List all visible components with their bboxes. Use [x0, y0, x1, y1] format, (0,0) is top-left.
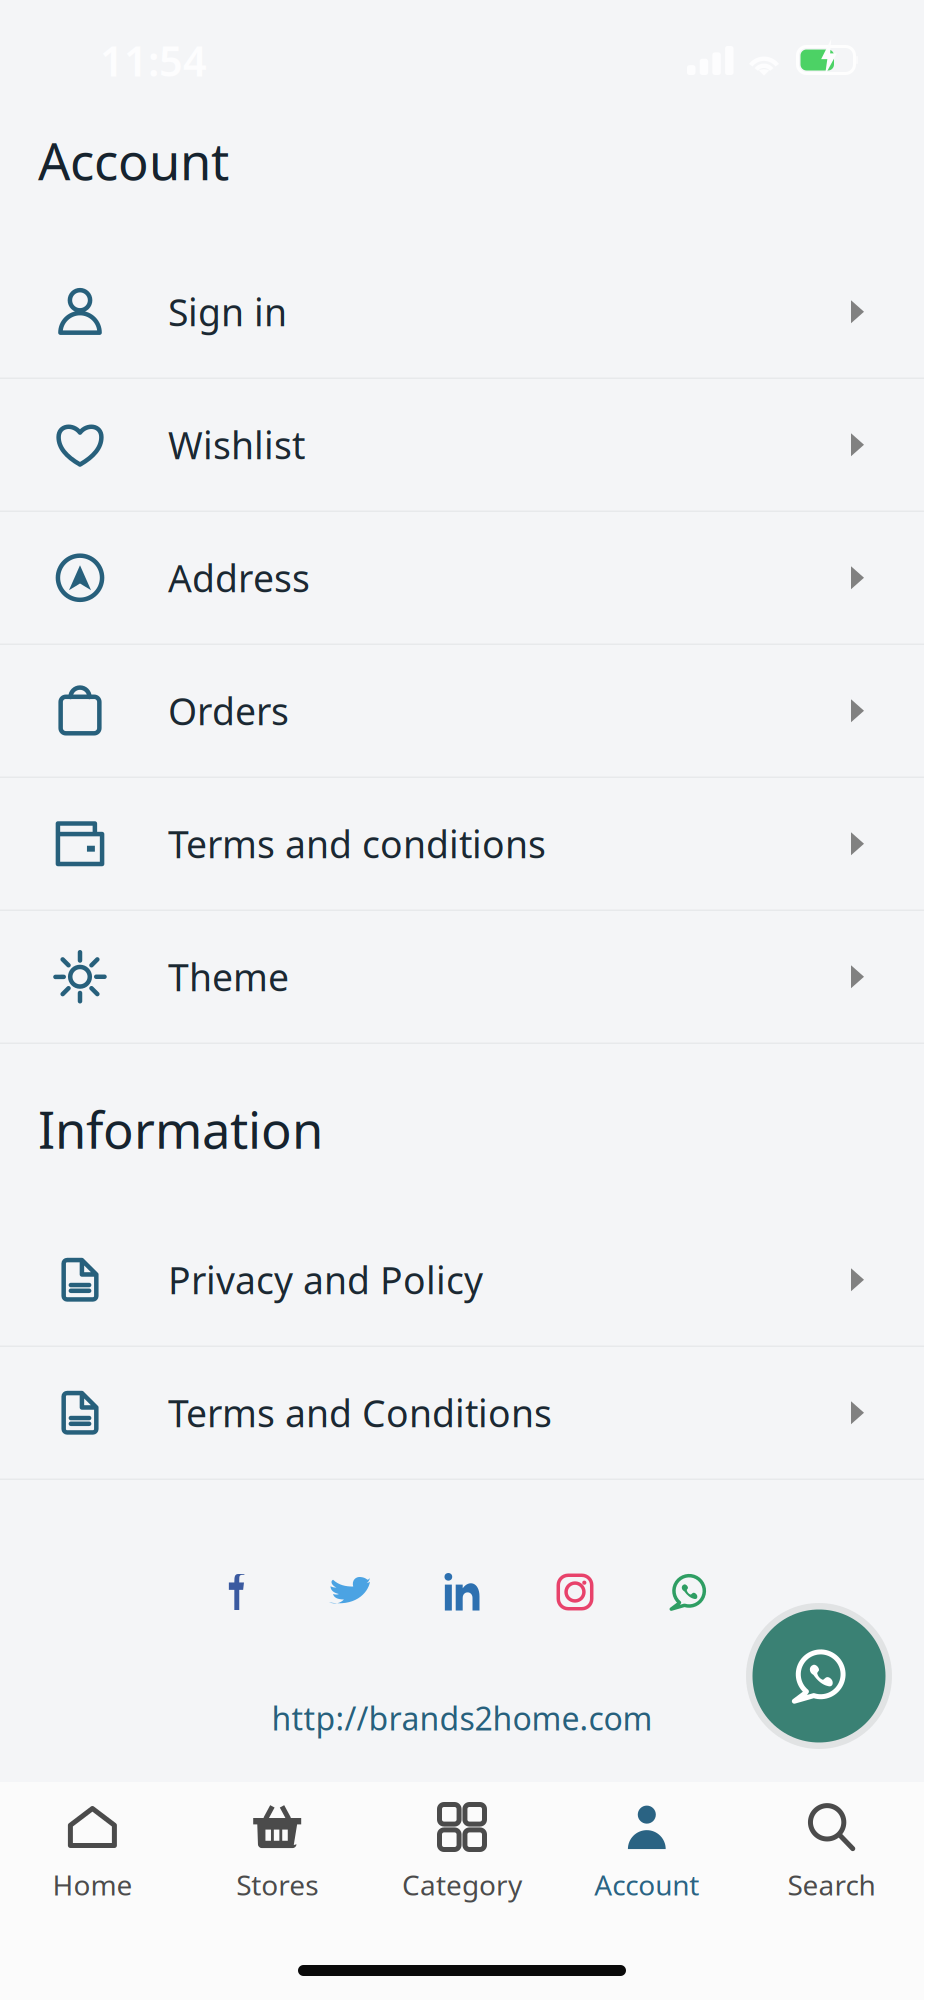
staticText: Terms and conditions: [168, 819, 546, 869]
button[interactable]: Address: [0, 512, 924, 643]
button[interactable]: Orders: [0, 645, 924, 776]
staticText: http://brands2home.com: [271, 1697, 652, 1739]
staticText: Information: [38, 1095, 323, 1163]
button[interactable]: WhatsApp: [631, 1568, 744, 1616]
button[interactable]: Chat on WhatsApp: [746, 1603, 892, 1749]
staticText: Wishlist: [168, 420, 305, 470]
button[interactable]: Category: [370, 1802, 554, 1903]
staticText: Stores: [236, 1866, 318, 1903]
button[interactable]: Stores: [185, 1802, 370, 1903]
staticText: Category: [402, 1866, 522, 1903]
staticText: Address: [168, 553, 310, 603]
button[interactable]: Home: [0, 1802, 185, 1903]
staticText: Orders: [168, 686, 289, 736]
staticText: Account: [594, 1866, 699, 1903]
staticText: Search: [788, 1866, 876, 1903]
button[interactable]: Theme: [0, 911, 924, 1042]
button[interactable]: Facebook: [179, 1568, 292, 1616]
button[interactable]: Search: [739, 1802, 924, 1903]
staticText: Sign in: [168, 287, 287, 337]
staticText: Terms and Conditions: [168, 1388, 552, 1438]
button[interactable]: Twitter: [292, 1568, 405, 1616]
button[interactable]: Terms and Conditions: [0, 1347, 924, 1478]
button[interactable]: LinkedIn: [405, 1568, 518, 1616]
button[interactable]: Instagram: [518, 1568, 631, 1616]
staticText: Account: [38, 127, 229, 194]
staticText: Privacy and Policy: [168, 1255, 483, 1305]
staticText: Home: [52, 1866, 132, 1903]
button[interactable]: Wishlist: [0, 379, 924, 510]
button[interactable]: Sign in: [0, 246, 924, 377]
button[interactable]: Account: [554, 1802, 739, 1903]
staticText: Theme: [168, 952, 289, 1002]
button[interactable]: Privacy and Policy: [0, 1214, 924, 1345]
button[interactable]: http://brands2home.com: [0, 1698, 924, 1738]
staticText: 11:54: [100, 33, 207, 88]
button[interactable]: Terms and conditions: [0, 778, 924, 909]
